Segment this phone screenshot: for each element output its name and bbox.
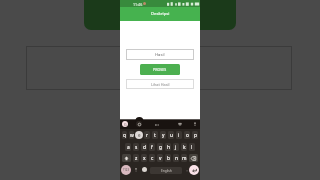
button[interactable]: PROSES bbox=[140, 64, 180, 75]
button[interactable]: a bbox=[125, 143, 131, 151]
button[interactable]: GIF bbox=[154, 122, 159, 127]
button[interactable]: d bbox=[141, 143, 147, 151]
button[interactable]: l bbox=[189, 143, 195, 151]
button[interactable]: i bbox=[176, 131, 182, 139]
button[interactable]: Lihat Hasil bbox=[126, 79, 194, 89]
staticText: 11:46 bbox=[133, 2, 143, 7]
staticText: s bbox=[135, 144, 138, 151]
staticText: Lihat Hasil bbox=[151, 82, 170, 87]
staticText: p bbox=[194, 132, 197, 139]
staticText: u bbox=[170, 132, 173, 139]
button[interactable]: z bbox=[133, 154, 139, 162]
staticText: f bbox=[151, 144, 153, 151]
staticText: j bbox=[175, 144, 177, 151]
staticText: v bbox=[159, 155, 162, 162]
staticText: Deskripsi bbox=[151, 11, 170, 17]
staticText: t bbox=[154, 132, 156, 139]
button[interactable]: Stickers bbox=[177, 121, 182, 126]
button[interactable]: English bbox=[150, 167, 182, 174]
staticText: l bbox=[191, 144, 193, 151]
staticText: k bbox=[183, 144, 186, 151]
button[interactable]: r bbox=[144, 131, 150, 139]
staticText: y bbox=[162, 132, 165, 139]
button[interactable]: Shift bbox=[122, 154, 131, 162]
button[interactable]: Backspace bbox=[189, 154, 198, 162]
button[interactable]: c bbox=[149, 154, 155, 162]
button[interactable]: Voice input bbox=[192, 121, 197, 126]
button[interactable]: Period bbox=[184, 167, 189, 172]
staticText: h bbox=[167, 144, 170, 151]
staticText: o bbox=[186, 132, 189, 139]
button[interactable]: u bbox=[168, 131, 174, 139]
button[interactable]: q bbox=[122, 131, 127, 139]
staticText: ?123 bbox=[123, 168, 130, 172]
staticText: PROSES bbox=[153, 67, 167, 72]
staticText: g bbox=[159, 144, 162, 151]
button[interactable]: b bbox=[165, 154, 171, 162]
staticText: a bbox=[127, 144, 130, 151]
staticText: c bbox=[151, 155, 154, 162]
button[interactable]: y bbox=[160, 131, 166, 139]
staticText: G bbox=[124, 122, 127, 127]
button[interactable]: x bbox=[141, 154, 147, 162]
staticText: b bbox=[167, 155, 170, 162]
button[interactable]: m bbox=[181, 154, 187, 162]
button[interactable]: Emoji bbox=[142, 167, 147, 172]
button[interactable]: s bbox=[133, 143, 139, 151]
button[interactable]: g bbox=[157, 143, 163, 151]
staticText: w bbox=[130, 132, 134, 139]
button[interactable]: Comma bbox=[133, 167, 138, 172]
button[interactable]: Enter bbox=[189, 165, 199, 175]
staticText: x bbox=[143, 155, 146, 162]
button[interactable]: j bbox=[173, 143, 179, 151]
staticText: i bbox=[178, 132, 180, 139]
button[interactable]: e bbox=[135, 131, 143, 139]
staticText: English bbox=[161, 169, 172, 173]
staticText: m bbox=[182, 155, 187, 162]
button[interactable]: Hasil bbox=[126, 49, 194, 60]
button[interactable]: n bbox=[173, 154, 179, 162]
button[interactable]: o bbox=[184, 131, 190, 139]
staticText: Hasil bbox=[155, 52, 165, 58]
button[interactable]: v bbox=[157, 154, 163, 162]
staticText: e bbox=[138, 132, 141, 138]
staticText: d bbox=[143, 144, 146, 151]
button[interactable]: t bbox=[152, 131, 158, 139]
button[interactable]: Open features bbox=[136, 121, 142, 127]
button[interactable]: Google search bbox=[122, 121, 128, 127]
button[interactable]: Symbols keyboard bbox=[121, 165, 131, 175]
staticText: q bbox=[123, 132, 126, 139]
button[interactable]: k bbox=[181, 143, 187, 151]
staticText: z bbox=[135, 155, 138, 162]
button[interactable]: h bbox=[165, 143, 171, 151]
button[interactable]: p bbox=[192, 131, 198, 139]
staticText: n bbox=[175, 155, 178, 162]
button[interactable]: w bbox=[129, 131, 134, 139]
staticText: r bbox=[146, 132, 148, 139]
button[interactable]: f bbox=[149, 143, 155, 151]
